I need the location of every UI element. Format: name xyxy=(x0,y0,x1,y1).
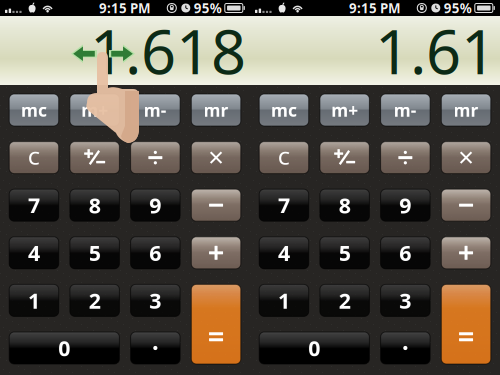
staticText: 6 xyxy=(399,239,411,267)
staticText: 95% xyxy=(444,0,472,17)
button[interactable]: 8 xyxy=(70,189,119,221)
staticText: 9 xyxy=(149,191,161,219)
staticText: 5 xyxy=(339,239,351,267)
button[interactable]: m- xyxy=(381,94,430,126)
staticText: 9 xyxy=(399,191,411,219)
button[interactable]: 0 xyxy=(9,332,119,364)
button[interactable]: Equals xyxy=(441,284,491,364)
button[interactable]: mc xyxy=(9,94,59,126)
button[interactable]: 6 xyxy=(381,237,430,269)
staticText: 0 xyxy=(58,334,70,362)
button[interactable]: 3 xyxy=(131,284,180,316)
staticText: 4 xyxy=(28,239,40,267)
staticText: 4 xyxy=(278,239,290,267)
button[interactable]: Decimal point xyxy=(381,332,430,364)
button[interactable]: 4 xyxy=(9,237,59,269)
staticText: C xyxy=(28,145,40,170)
staticText: 8 xyxy=(339,191,351,219)
staticText: 2 xyxy=(339,286,351,314)
staticText: 1 xyxy=(28,286,40,314)
button[interactable]: 5 xyxy=(70,237,119,269)
staticText: 9:15 PM xyxy=(99,0,151,17)
staticText: 7 xyxy=(278,191,290,219)
staticText: 9:15 PM xyxy=(349,0,401,17)
button[interactable]: 5 xyxy=(320,237,369,269)
button[interactable]: Plus xyxy=(441,237,491,269)
button[interactable]: 7 xyxy=(259,189,309,221)
staticText: 3 xyxy=(399,286,411,314)
button[interactable]: Decimal point xyxy=(131,332,180,364)
staticText: mc xyxy=(21,98,47,121)
staticText: 5 xyxy=(89,239,101,267)
staticText: C xyxy=(278,145,290,170)
staticText: 7 xyxy=(28,191,40,219)
button[interactable]: 3 xyxy=(381,284,430,316)
staticText: mc xyxy=(271,98,297,121)
staticText: 1.618 xyxy=(90,10,246,91)
button[interactable]: mc xyxy=(259,94,309,126)
button[interactable]: 2 xyxy=(70,284,119,316)
button[interactable]: C xyxy=(9,142,59,174)
button[interactable]: 6 xyxy=(131,237,180,269)
staticText: 8 xyxy=(89,191,101,219)
staticText: 1.61 xyxy=(375,10,496,91)
staticText: m+ xyxy=(331,98,358,121)
button[interactable]: m+ xyxy=(320,94,369,126)
staticText: mr xyxy=(204,98,229,121)
button[interactable]: Equals xyxy=(191,284,241,364)
button[interactable]: 0 xyxy=(259,332,369,364)
button[interactable]: 9 xyxy=(381,189,430,221)
button[interactable]: 8 xyxy=(320,189,369,221)
staticText: 1 xyxy=(278,286,290,314)
button[interactable]: Minus xyxy=(441,189,491,221)
staticText: 6 xyxy=(149,239,161,267)
staticText: m+ xyxy=(81,98,108,121)
staticText: 0 xyxy=(308,334,320,362)
button[interactable]: Plus minus xyxy=(70,142,119,174)
button[interactable]: m- xyxy=(131,94,180,126)
staticText: 2 xyxy=(89,286,101,314)
button[interactable]: Multiply xyxy=(191,142,241,174)
button[interactable]: 1 xyxy=(259,284,309,316)
button[interactable]: 9 xyxy=(131,189,180,221)
staticText: m- xyxy=(144,98,167,121)
staticText: mr xyxy=(454,98,479,121)
button[interactable]: Divide xyxy=(131,142,180,174)
button[interactable]: Minus xyxy=(191,189,241,221)
button[interactable]: Plus xyxy=(191,237,241,269)
staticText: m- xyxy=(394,98,417,121)
button[interactable]: mr xyxy=(191,94,241,126)
staticText: 3 xyxy=(149,286,161,314)
button[interactable]: C xyxy=(259,142,309,174)
button[interactable]: 2 xyxy=(320,284,369,316)
button[interactable]: Multiply xyxy=(441,142,491,174)
button[interactable]: 1 xyxy=(9,284,59,316)
button[interactable]: Plus minus xyxy=(320,142,369,174)
button[interactable]: 4 xyxy=(259,237,309,269)
button[interactable]: mr xyxy=(441,94,491,126)
button[interactable]: 7 xyxy=(9,189,59,221)
button[interactable]: m+ xyxy=(70,94,119,126)
staticText: 95% xyxy=(194,0,222,17)
button[interactable]: Divide xyxy=(381,142,430,174)
